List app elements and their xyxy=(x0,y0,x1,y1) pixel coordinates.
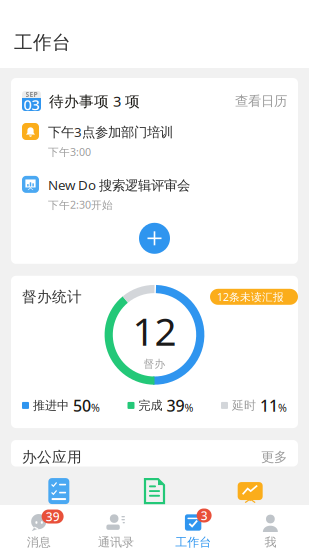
staticText: 待办事项 3 项 xyxy=(49,91,140,111)
staticText: 督办统计 xyxy=(22,288,82,306)
staticText: 更多 xyxy=(261,449,287,465)
staticText: 工作台 xyxy=(14,31,71,54)
button[interactable]: 公文 xyxy=(107,477,202,527)
staticText: SEP xyxy=(25,90,37,99)
staticText: 3 xyxy=(201,507,208,523)
button[interactable]: 更多 xyxy=(261,449,287,465)
staticText: 12 xyxy=(132,305,176,356)
button[interactable]: 新建待办 xyxy=(139,223,170,254)
button[interactable]: 汇报 xyxy=(202,477,298,527)
button[interactable]: 查看日历 xyxy=(235,93,287,109)
staticText: 11% xyxy=(260,395,287,416)
staticText: 我 xyxy=(264,535,276,550)
staticText: 消息 xyxy=(27,535,51,550)
button[interactable]: 我 xyxy=(232,513,309,550)
staticText: New Do 搜索逻辑评审会 xyxy=(48,176,190,194)
button[interactable]: 12条未读汇报 xyxy=(210,289,298,305)
staticText: 查看日历 xyxy=(235,93,287,109)
button[interactable]: 3 xyxy=(154,513,232,550)
staticText: 12条未读汇报 xyxy=(217,290,284,304)
staticText: 通讯录 xyxy=(98,535,134,550)
button[interactable]: 待办 xyxy=(11,477,107,527)
staticText: 39 xyxy=(46,508,60,524)
staticText: 延时 xyxy=(232,398,256,413)
staticText: 下午3:00 xyxy=(48,145,91,159)
staticText: 下午2:30开始 xyxy=(48,198,113,212)
staticText: 办公应用 xyxy=(22,448,82,466)
staticText: 完成 xyxy=(138,398,162,413)
staticText: 50% xyxy=(73,395,100,416)
staticText: 03 xyxy=(23,95,39,114)
button[interactable]: New Do 搜索逻辑评审会 xyxy=(22,176,287,212)
staticText: 推进中 xyxy=(33,398,69,413)
staticText: 下午3点参加部门培训 xyxy=(48,123,173,141)
staticText: 待办 xyxy=(46,511,72,527)
staticText: 39% xyxy=(166,395,193,416)
button[interactable]: 下午3点参加部门培训 xyxy=(22,123,287,159)
button[interactable]: 通讯录 xyxy=(77,513,154,550)
staticText: 督办 xyxy=(143,357,165,370)
staticText: 工作台 xyxy=(175,535,211,550)
button[interactable]: 39 xyxy=(0,513,77,550)
